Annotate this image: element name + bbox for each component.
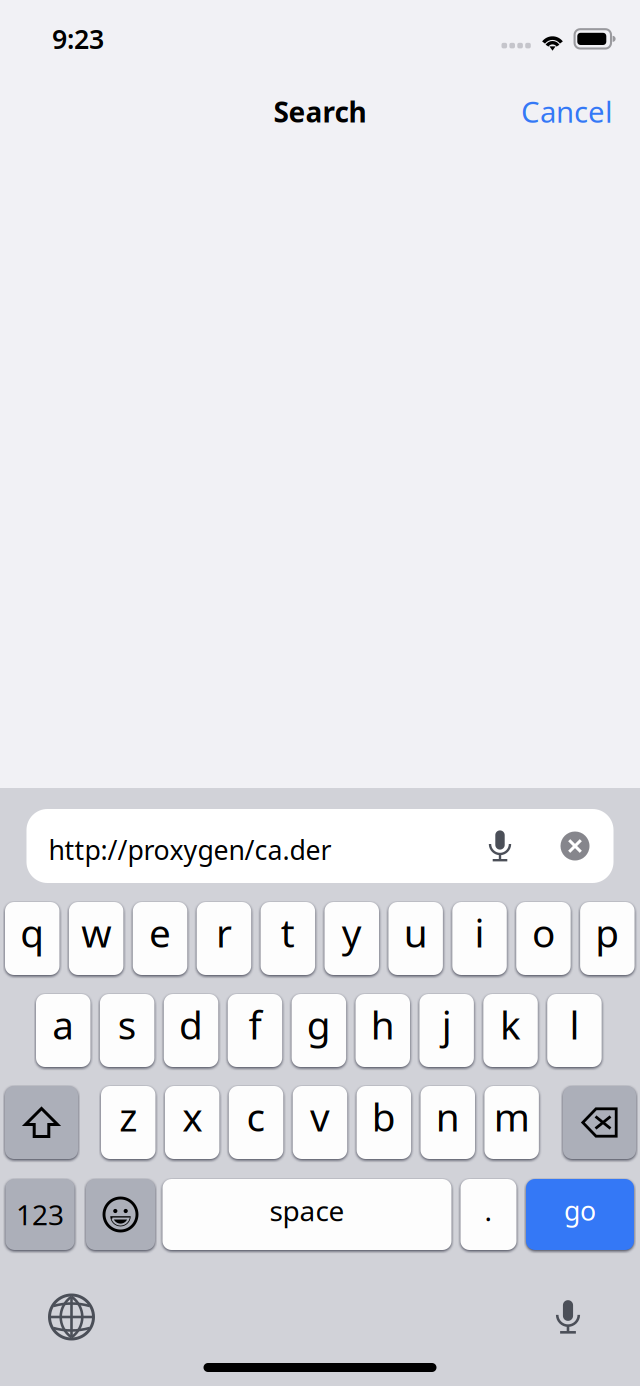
button[interactable]: r <box>197 902 251 975</box>
staticText: q <box>20 907 44 958</box>
button[interactable]: q <box>5 902 59 975</box>
button[interactable]: l <box>547 994 602 1067</box>
staticText: 9:23 <box>52 21 104 56</box>
staticText: h <box>371 999 395 1050</box>
staticText: . <box>484 1192 492 1229</box>
button[interactable]: s <box>100 994 154 1067</box>
staticText: b <box>372 1091 396 1142</box>
staticText: p <box>595 907 619 958</box>
staticText: r <box>216 907 232 958</box>
staticText: y <box>342 907 362 958</box>
button[interactable]: i <box>452 902 507 975</box>
staticText: l <box>569 999 579 1050</box>
button[interactable]: p <box>580 902 635 975</box>
button[interactable]: x <box>165 1086 219 1159</box>
staticText: go <box>564 1193 596 1228</box>
button[interactable]: f <box>228 994 282 1067</box>
button[interactable]: . <box>460 1179 516 1250</box>
staticText: Search <box>273 93 366 130</box>
button[interactable]: a <box>36 994 90 1067</box>
button[interactable]: h <box>355 994 410 1067</box>
button[interactable]: w <box>69 902 123 975</box>
staticText: z <box>119 1091 137 1142</box>
button[interactable]: go <box>526 1179 634 1250</box>
button[interactable]: v <box>293 1086 347 1159</box>
button[interactable]: Clear text <box>549 815 601 877</box>
staticText: d <box>179 999 203 1050</box>
staticText: k <box>500 999 521 1050</box>
staticText: http://proxygen/ca.der <box>48 832 331 867</box>
button[interactable]: m <box>484 1086 539 1159</box>
button[interactable]: o <box>516 902 571 975</box>
button[interactable] <box>563 1086 636 1159</box>
staticText: g <box>307 999 331 1050</box>
button[interactable]: Cancel <box>513 84 621 139</box>
button[interactable]: t <box>261 902 315 975</box>
staticText: n <box>436 1091 460 1142</box>
button[interactable]: c <box>229 1086 283 1159</box>
staticText: u <box>404 907 428 958</box>
staticText: w <box>81 907 111 958</box>
staticText: x <box>182 1091 202 1142</box>
button[interactable]: z <box>101 1086 155 1159</box>
staticText: o <box>532 907 555 958</box>
staticText: c <box>247 1091 266 1142</box>
button[interactable]: k <box>483 994 538 1067</box>
staticText: v <box>310 1091 330 1142</box>
staticText: Cancel <box>521 92 613 131</box>
button[interactable]: b <box>357 1086 411 1159</box>
button[interactable] <box>5 1086 78 1159</box>
staticText: f <box>248 999 261 1050</box>
button[interactable]: 123 <box>5 1179 74 1250</box>
staticText: t <box>281 907 295 958</box>
button[interactable]: Next keyboard <box>35 1286 107 1348</box>
staticText: space <box>269 1192 344 1229</box>
button[interactable]: space <box>162 1179 451 1250</box>
button[interactable]: Dictate <box>474 815 526 877</box>
button[interactable]: y <box>324 902 379 975</box>
button[interactable]: d <box>164 994 218 1067</box>
button[interactable]: g <box>292 994 346 1067</box>
button[interactable] <box>86 1179 155 1250</box>
button[interactable]: n <box>420 1086 475 1159</box>
staticText: j <box>442 999 452 1050</box>
button[interactable]: u <box>388 902 443 975</box>
button[interactable]: e <box>133 902 187 975</box>
button[interactable]: Dictate <box>532 1286 604 1348</box>
staticText: m <box>494 1091 530 1142</box>
staticText: a <box>52 999 74 1050</box>
staticText: e <box>149 907 171 958</box>
staticText: i <box>474 907 484 958</box>
staticText: 123 <box>16 1196 64 1233</box>
button[interactable]: j <box>419 994 474 1067</box>
staticText: s <box>118 999 137 1050</box>
